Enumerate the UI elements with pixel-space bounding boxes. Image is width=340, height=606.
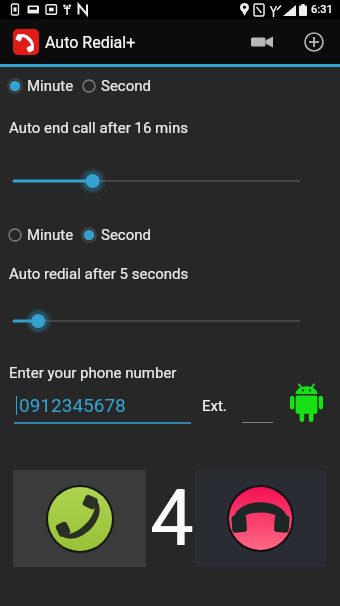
staticText: Minute [27, 77, 74, 95]
button[interactable]: Slider [0, 170, 340, 192]
staticText: 4 [150, 473, 190, 564]
button[interactable]: Second [81, 73, 153, 99]
button[interactable]: 0912345678 [14, 392, 191, 424]
staticText: Enter your phone number [9, 364, 177, 382]
staticText: 6:31 [311, 3, 333, 16]
staticText: Second [101, 77, 152, 95]
staticText: Auto end call after 16 mins [9, 119, 188, 137]
button[interactable]: Second [81, 222, 153, 248]
button[interactable]: Add [292, 19, 336, 65]
button[interactable]: End call [195, 470, 326, 567]
staticText: Auto redial after 5 seconds [9, 265, 189, 283]
staticText: Minute [27, 226, 74, 244]
staticText: Auto Redial+ [45, 33, 136, 52]
staticText: Second [101, 226, 152, 244]
button[interactable]: Call [13, 470, 146, 567]
button[interactable]: Pick contact [285, 382, 327, 424]
staticText: Ext. [202, 397, 227, 415]
staticText: 0912345678 [19, 394, 126, 416]
button[interactable]: Minute [7, 222, 75, 248]
button[interactable]: Slider [0, 310, 340, 332]
button[interactable]: Video call [240, 19, 284, 65]
button[interactable]: Minute [7, 73, 75, 99]
